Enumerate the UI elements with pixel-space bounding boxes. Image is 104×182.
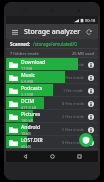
staticText: DCIM — [21, 98, 35, 105]
staticText: 180 kB — [21, 118, 33, 123]
button[interactable]: Folder info — [87, 113, 95, 121]
button[interactable]: Folder info — [87, 100, 95, 108]
button[interactable]: Recent apps — [71, 151, 87, 162]
staticText: 7 files inside — [62, 75, 84, 80]
staticText: 17 MB — [21, 66, 33, 71]
button[interactable]: Clean storage — [79, 133, 93, 147]
button[interactable]: Back — [17, 151, 33, 162]
staticText: Android — [21, 124, 41, 131]
button[interactable]: Android — [6, 123, 98, 136]
staticText: 8 files inside — [62, 101, 84, 106]
staticText: Download — [21, 59, 46, 66]
button[interactable]: Folder info — [87, 126, 95, 134]
staticText: LOST.DIR — [21, 137, 43, 144]
staticText: Podcasts — [21, 85, 43, 92]
staticText: Pictures — [21, 111, 41, 118]
button[interactable]: Folder info — [87, 87, 95, 95]
button[interactable]: Folder info — [87, 139, 95, 147]
button[interactable]: Download — [6, 58, 98, 71]
button[interactable]: DCIM — [6, 97, 98, 110]
button[interactable]: Podcasts — [6, 84, 98, 97]
button[interactable]: Home — [44, 151, 60, 162]
staticText: 5 files inside — [62, 127, 84, 132]
staticText: 18 kB — [21, 131, 31, 136]
staticText: 2 files inside — [62, 114, 84, 119]
button[interactable]: Folder info — [87, 74, 95, 82]
button[interactable]: Folder info — [87, 61, 95, 69]
staticText: /storage/emulated/0 — [33, 41, 77, 47]
staticText: Music — [21, 72, 35, 79]
staticText: Scanned: — [10, 41, 31, 47]
staticText: 25 MB used — [72, 51, 94, 56]
staticText: 7 folders inside — [10, 51, 39, 56]
button[interactable]: LOST.DIR — [6, 136, 98, 149]
staticText: 00:18 — [85, 18, 96, 23]
staticText: 0 files inside — [62, 140, 84, 145]
button[interactable]: Pictures — [6, 110, 98, 123]
button[interactable]: Rescan — [84, 27, 94, 37]
staticText: 1 file inside — [63, 88, 84, 93]
button[interactable]: Music — [6, 71, 98, 84]
staticText: 417.3 kB — [21, 105, 37, 110]
staticText: 2.3 MB — [21, 92, 34, 97]
button[interactable]: Scanned: — [10, 39, 94, 48]
staticText: 3 files inside — [62, 62, 84, 67]
button[interactable]: Open navigation menu — [10, 27, 20, 37]
staticText: 5.6 MB — [21, 79, 34, 84]
staticText: Storage analyzer — [24, 27, 84, 37]
staticText: 40 kB — [21, 144, 31, 149]
